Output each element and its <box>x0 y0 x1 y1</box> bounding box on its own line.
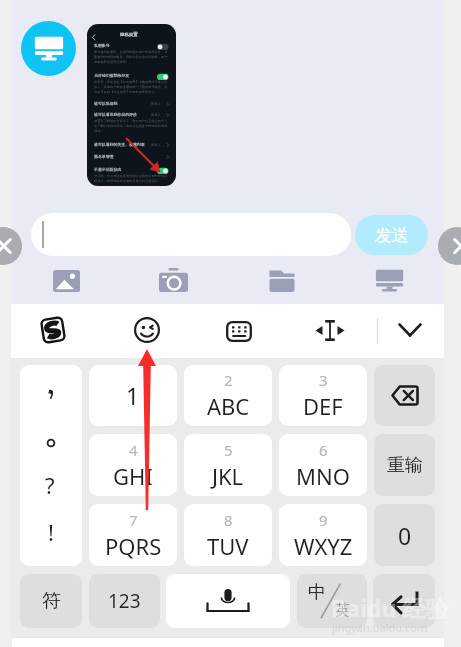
staticText: 英 <box>335 601 350 620</box>
staticText: 4 <box>129 440 138 460</box>
button[interactable]: Language <box>297 574 367 628</box>
staticText: 所有人 <box>151 102 161 106</box>
button[interactable]: Delete <box>374 365 435 426</box>
staticText: 不显示活跃状态 <box>94 167 122 172</box>
button[interactable]: Key 1 <box>89 365 177 426</box>
staticText: WXYZ <box>294 531 353 561</box>
staticText: 3 <box>319 370 328 390</box>
button[interactable]: Key 9 <box>279 504 367 566</box>
staticText: 5 <box>224 440 233 460</box>
staticText: 开启后，别人无法在其他页面以及聊天中看到你的活跃状态，同时你也无法看到其他人的活… <box>94 174 170 183</box>
button[interactable]: Punctuation <box>20 365 82 566</box>
staticText: 私密帐号 <box>94 43 110 48</box>
button[interactable]: Next <box>438 227 461 265</box>
staticText: 黑名单管理 <box>94 154 114 159</box>
staticText: 所有人 <box>151 113 161 117</box>
staticText: 发送 <box>375 225 409 246</box>
staticText: 谁可以私信我 <box>94 101 118 106</box>
staticText: 6 <box>319 440 328 460</box>
button[interactable]: Key 8 <box>184 504 272 566</box>
button[interactable]: Input method <box>33 310 73 350</box>
button[interactable]: Key 4 <box>89 434 177 496</box>
staticText: 中 <box>308 581 326 604</box>
button[interactable]: Avatar <box>21 21 76 76</box>
staticText: MNO <box>296 461 350 491</box>
staticText: 2 <box>224 370 233 390</box>
staticText: 7 <box>129 510 138 530</box>
button[interactable]: Close <box>0 227 22 265</box>
staticText: 123 <box>108 588 141 614</box>
staticText: DEF <box>303 391 343 421</box>
button[interactable]: Screen <box>361 261 418 301</box>
staticText: 隐私设置 <box>120 32 138 38</box>
button[interactable]: Screenshot <box>87 24 176 186</box>
button[interactable]: Emoji <box>127 310 167 350</box>
staticText: jingyan.baidu.com <box>332 620 428 635</box>
button[interactable]: Space <box>166 574 290 628</box>
button[interactable]: Key 5 <box>184 434 272 496</box>
staticText: 1 <box>126 380 140 411</box>
button[interactable]: Key 2 <box>184 365 272 426</box>
staticText: 所有人 <box>151 143 161 147</box>
button[interactable]: Symbols <box>20 574 82 628</box>
button[interactable]: Keyboard <box>213 311 265 351</box>
button[interactable]: Key 6 <box>279 434 367 496</box>
button[interactable]: Files <box>254 262 310 300</box>
button[interactable] <box>31 213 351 256</box>
staticText: 9 <box>319 510 328 530</box>
button[interactable]: Key 0 <box>374 504 435 566</box>
staticText: 符 <box>42 589 61 613</box>
staticText: 8 <box>224 510 233 530</box>
staticText: ! <box>48 517 54 547</box>
button[interactable]: Move cursor <box>305 310 355 350</box>
button[interactable]: Enter <box>373 574 435 628</box>
staticText: 允许他们推荐给好友 <box>94 73 130 78</box>
staticText: 设置可了解谁正在评论了，谁的用户在互动上的个人不了解的信息已评论，也不会在更多干… <box>94 119 170 133</box>
staticText: ABC <box>207 391 250 421</box>
button[interactable]: Redo <box>374 434 435 496</box>
staticText: PQRS <box>105 531 162 561</box>
staticText: 谁可以看见我作品的评价 <box>94 112 137 117</box>
staticText: TUV <box>207 531 249 561</box>
button[interactable]: 发送 <box>355 215 428 255</box>
staticText: GHI <box>113 461 153 491</box>
button[interactable]: Key 7 <box>89 504 177 566</box>
button[interactable]: Numbers <box>89 574 160 628</box>
button[interactable]: Gallery <box>39 262 94 300</box>
button[interactable]: Camera <box>145 260 202 300</box>
button[interactable]: Hide keyboard <box>390 310 430 350</box>
staticText: ? <box>45 470 55 500</box>
staticText: 谁可以看到的关注、收藏列表 <box>94 142 145 147</box>
staticText: 关闭后，你不会在【好友推荐】中被推荐给可能认识的人。其他用户也不会通过同一个通讯… <box>94 80 170 94</box>
staticText: 帐号设为私密时，只有你批准的用户才能关注你，并查看你的内容和更新。您的粉丝不会自… <box>94 50 170 64</box>
staticText: Baidu 经验 <box>331 592 449 623</box>
staticText: JKL <box>212 461 244 491</box>
staticText: 0 <box>398 520 412 551</box>
staticText: 重输 <box>387 454 423 477</box>
button[interactable]: Key 3 <box>279 365 367 426</box>
